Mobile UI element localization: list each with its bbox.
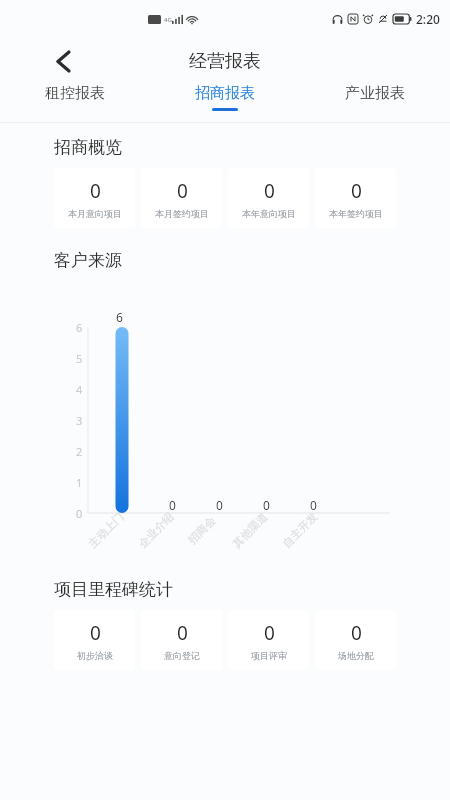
button[interactable]: 0 [315,610,396,670]
staticText: 4G [164,16,172,24]
staticText: 4 [76,382,83,397]
button[interactable]: 租控报表 [0,84,150,111]
staticText: 1 [76,475,83,490]
button[interactable]: 0 [54,610,135,670]
staticText: 0 [351,620,362,646]
staticText: 6 [116,309,123,325]
staticText: 其他渠道 [229,509,270,550]
staticText: 2 [76,444,83,459]
staticText: 0 [76,506,83,521]
staticText: 场地分配 [338,650,374,661]
staticText: 经营报表 [189,50,261,73]
staticText: 0 [90,620,101,646]
button[interactable]: 产业报表 [300,84,450,111]
staticText: 企业介绍 [135,509,176,550]
staticText: 招商概览 [54,137,122,158]
staticText: 产业报表 [345,84,405,103]
staticText: 2:20 [416,11,440,27]
staticText: 租控报表 [45,84,105,103]
staticText: 项目评审 [251,650,287,661]
button[interactable]: 0 [54,168,135,228]
staticText: 招商会 [185,513,218,547]
staticText: 本年签约项目 [329,208,383,219]
staticText: 0 [310,497,317,513]
staticText: 0 [351,178,362,204]
staticText: 5 [76,351,83,366]
staticText: 本月意向项目 [68,208,122,219]
staticText: 6 [76,320,83,335]
staticText: 0 [216,497,223,513]
button[interactable]: 0 [141,610,222,670]
staticText: 0 [169,497,176,513]
staticText: 3 [76,413,83,428]
button[interactable]: 0 [315,168,396,228]
button[interactable]: 0 [228,168,309,228]
staticText: 本年意向项目 [242,208,296,219]
staticText: 0 [264,178,275,204]
staticText: 主动上门 [85,509,126,550]
staticText: 0 [264,620,275,646]
staticText: 0 [263,497,270,513]
button[interactable]: 招商报表 [150,84,300,111]
staticText: 初步洽谈 [77,650,113,661]
staticText: 0 [177,620,188,646]
staticText: 自主开发 [279,509,320,550]
staticText: 0 [177,178,188,204]
staticText: 项目里程碑统计 [54,579,173,600]
staticText: 本月签约项目 [155,208,209,219]
staticText: 客户来源 [54,250,122,271]
button[interactable]: 0 [141,168,222,228]
button[interactable]: 0 [228,610,309,670]
staticText: 意向登记 [164,650,200,661]
button[interactable]: Back [48,46,78,76]
staticText: 0 [90,178,101,204]
staticText: 招商报表 [195,84,255,103]
